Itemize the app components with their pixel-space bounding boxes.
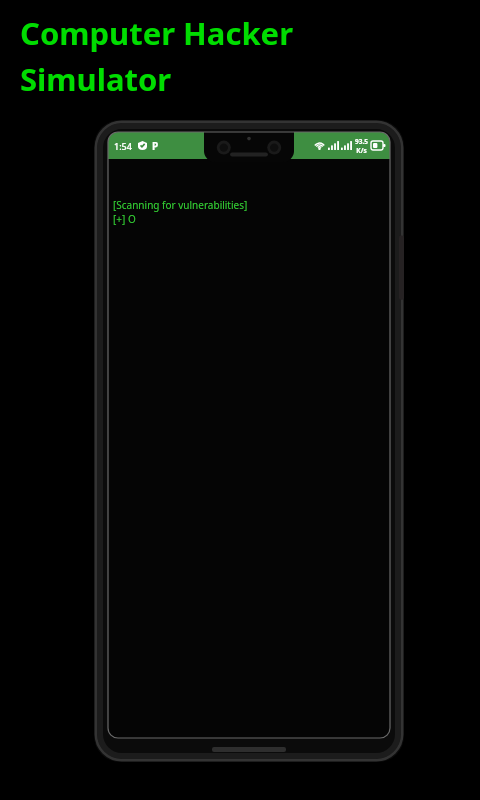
staticText: 1:54 [114, 140, 132, 152]
staticText: Simulator [20, 58, 172, 100]
staticText: [Scanning for vulnerabilities] [113, 198, 248, 212]
staticText: 93.5 [355, 137, 368, 146]
staticText: Computer Hacker [20, 12, 293, 54]
staticText: P [152, 139, 159, 153]
button[interactable]: [Scanning for vulnerabilities] [113, 198, 390, 226]
staticText: [+] O [113, 212, 136, 226]
staticText: K/s [356, 146, 367, 155]
